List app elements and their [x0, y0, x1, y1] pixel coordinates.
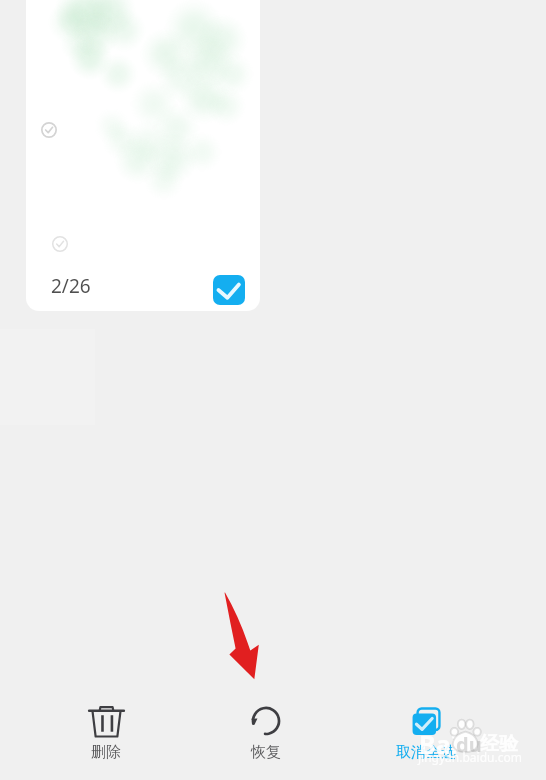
button[interactable]: 2/26 — [26, 0, 260, 311]
staticText: du — [456, 731, 482, 758]
button[interactable]: Selected — [213, 275, 245, 305]
staticText: 删除 — [91, 743, 121, 762]
staticText: jingyan.baidu.com — [418, 749, 522, 765]
staticText: Bai — [419, 727, 459, 761]
staticText: 经验 — [480, 732, 518, 756]
staticText: 2/26 — [51, 273, 91, 299]
staticText: 恢复 — [251, 743, 281, 762]
button[interactable]: Delete — [26, 702, 186, 764]
staticText: 取消全选 — [396, 743, 456, 762]
other: Restore — [251, 704, 281, 738]
other: Delete — [89, 704, 124, 738]
button[interactable]: Restore — [186, 702, 346, 764]
other: Cancel select all — [412, 704, 440, 738]
button[interactable]: Cancel select all — [346, 702, 506, 764]
